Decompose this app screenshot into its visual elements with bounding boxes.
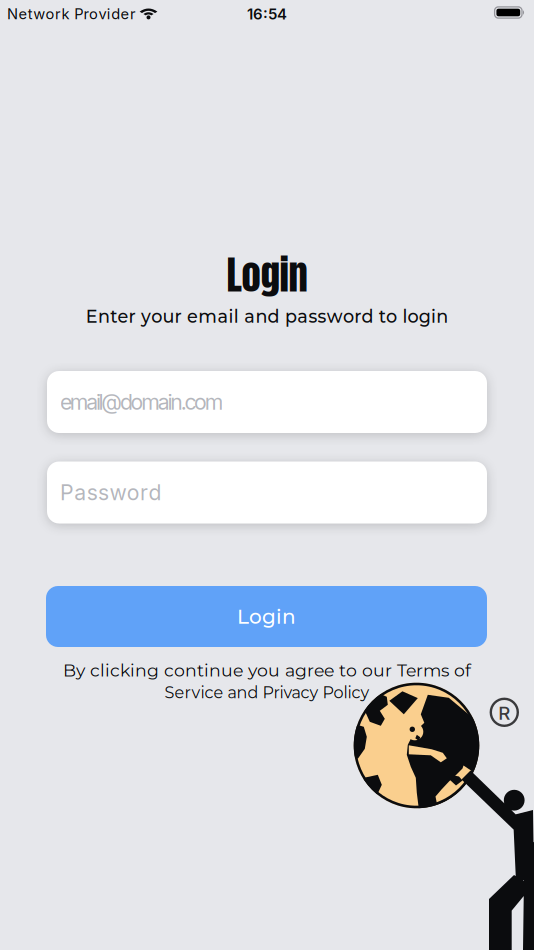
staticText: R — [498, 702, 510, 724]
button[interactable]: Email — [47, 371, 487, 433]
staticText: Password — [60, 480, 161, 505]
button[interactable]: Login — [46, 586, 487, 647]
staticText: email@domain.com — [60, 389, 224, 415]
staticText: 16:54 — [247, 5, 287, 23]
staticText: Login — [226, 246, 307, 304]
staticText: Login — [237, 604, 296, 629]
staticText: Network Provider — [7, 5, 136, 23]
staticText: Enter your email and password to login — [86, 306, 448, 327]
staticText: By clicking continue you agree to our Te… — [63, 660, 471, 681]
button[interactable]: Password — [47, 461, 487, 523]
staticText: Service and Privacy Policy — [164, 683, 369, 702]
